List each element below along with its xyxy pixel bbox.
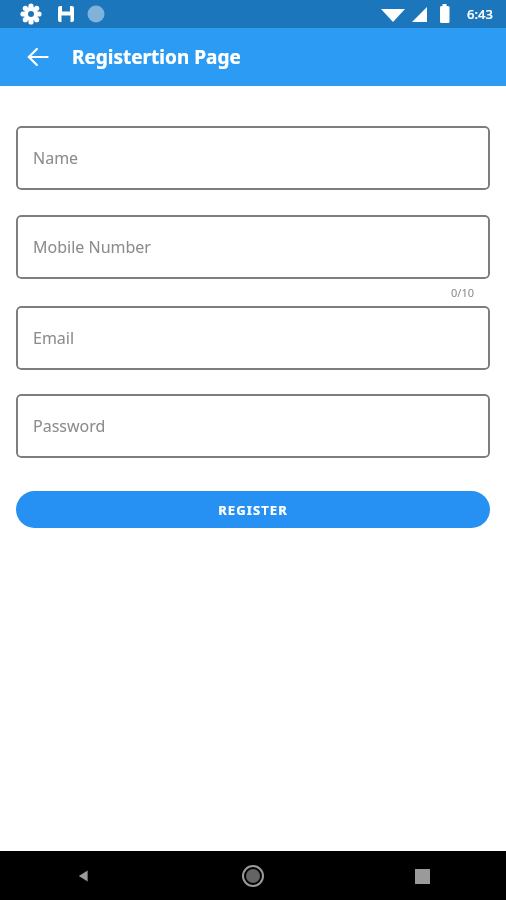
button[interactable]: Back: [60, 852, 108, 900]
button[interactable]: Password: [16, 394, 490, 458]
button[interactable]: Mobile Number: [16, 215, 490, 279]
button[interactable]: REGISTER: [16, 491, 490, 528]
staticText: Password: [33, 415, 106, 437]
button[interactable]: Home: [229, 852, 277, 900]
button[interactable]: Name: [16, 126, 490, 190]
staticText: Name: [33, 147, 79, 169]
staticText: 0/10: [451, 285, 474, 300]
button[interactable]: Recent apps: [398, 852, 446, 900]
staticText: REGISTER: [218, 501, 288, 519]
button[interactable]: Back: [14, 33, 62, 81]
staticText: Mobile Number: [33, 236, 151, 258]
staticText: 6:43: [467, 5, 493, 23]
staticText: Email: [33, 327, 75, 349]
button[interactable]: Email: [16, 306, 490, 370]
staticText: Registertion Page: [72, 44, 241, 70]
